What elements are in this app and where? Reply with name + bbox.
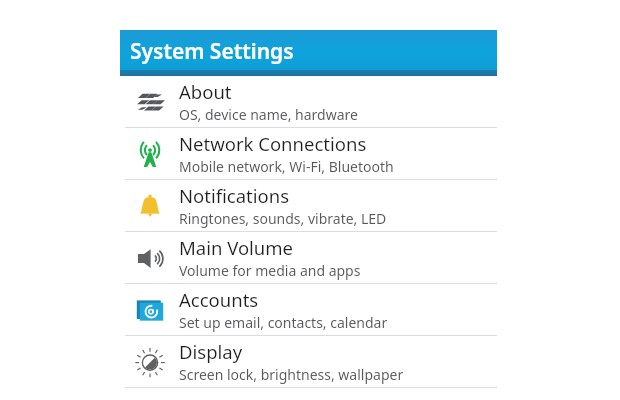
staticText: About <box>179 79 232 104</box>
staticText: Mobile network, Wi-Fi, Bluetooth <box>179 157 394 176</box>
other: Accounts <box>135 295 165 325</box>
button[interactable]: About <box>120 76 497 128</box>
other: About <box>135 87 165 117</box>
staticText: System Settings <box>130 37 294 66</box>
staticText: Screen lock, brightness, wallpaper <box>179 365 404 384</box>
staticText: Display <box>179 339 243 364</box>
staticText: Ringtones, sounds, vibrate, LED <box>179 209 387 228</box>
staticText: Network Connections <box>179 131 367 156</box>
button[interactable]: Display <box>120 336 497 388</box>
button[interactable]: Accounts <box>120 284 497 336</box>
staticText: OS, device name, hardware <box>179 105 358 124</box>
staticText: Main Volume <box>179 235 294 260</box>
other: Display <box>135 347 165 377</box>
button[interactable]: Network Connections <box>120 128 497 180</box>
button[interactable]: Main Volume <box>120 232 497 284</box>
other: Main Volume <box>135 243 165 273</box>
staticText: Notifications <box>179 183 290 208</box>
staticText: Set up email, contacts, calendar <box>179 313 388 332</box>
other: Notifications <box>135 191 165 221</box>
staticText: Volume for media and apps <box>179 261 361 280</box>
other: Network Connections <box>135 139 165 169</box>
staticText: Accounts <box>179 287 259 312</box>
button[interactable]: Notifications <box>120 180 497 232</box>
